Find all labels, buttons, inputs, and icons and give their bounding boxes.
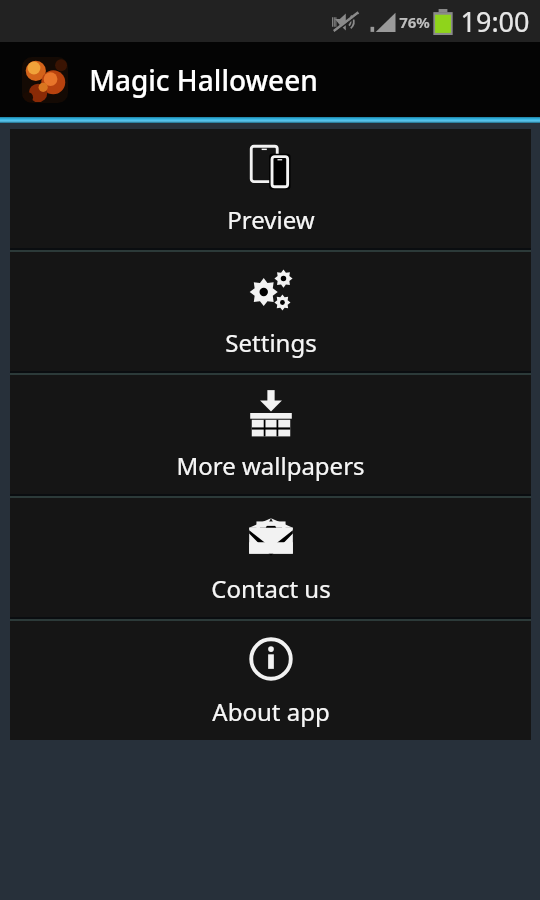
button[interactable]: About app [10,621,531,740]
button[interactable]: Preview [10,129,531,248]
staticText: 76% [399,12,430,32]
staticText: About app [212,695,330,728]
button[interactable]: More wallpapers [10,375,531,494]
button[interactable]: Settings [10,252,531,371]
button[interactable]: Contact us [10,498,531,617]
staticText: Preview [227,203,315,236]
staticText: Contact us [211,572,331,605]
staticText: Magic Halloween [89,61,318,99]
staticText: Settings [225,326,317,359]
staticText: More wallpapers [176,449,365,482]
staticText: 19:00 [460,3,530,40]
